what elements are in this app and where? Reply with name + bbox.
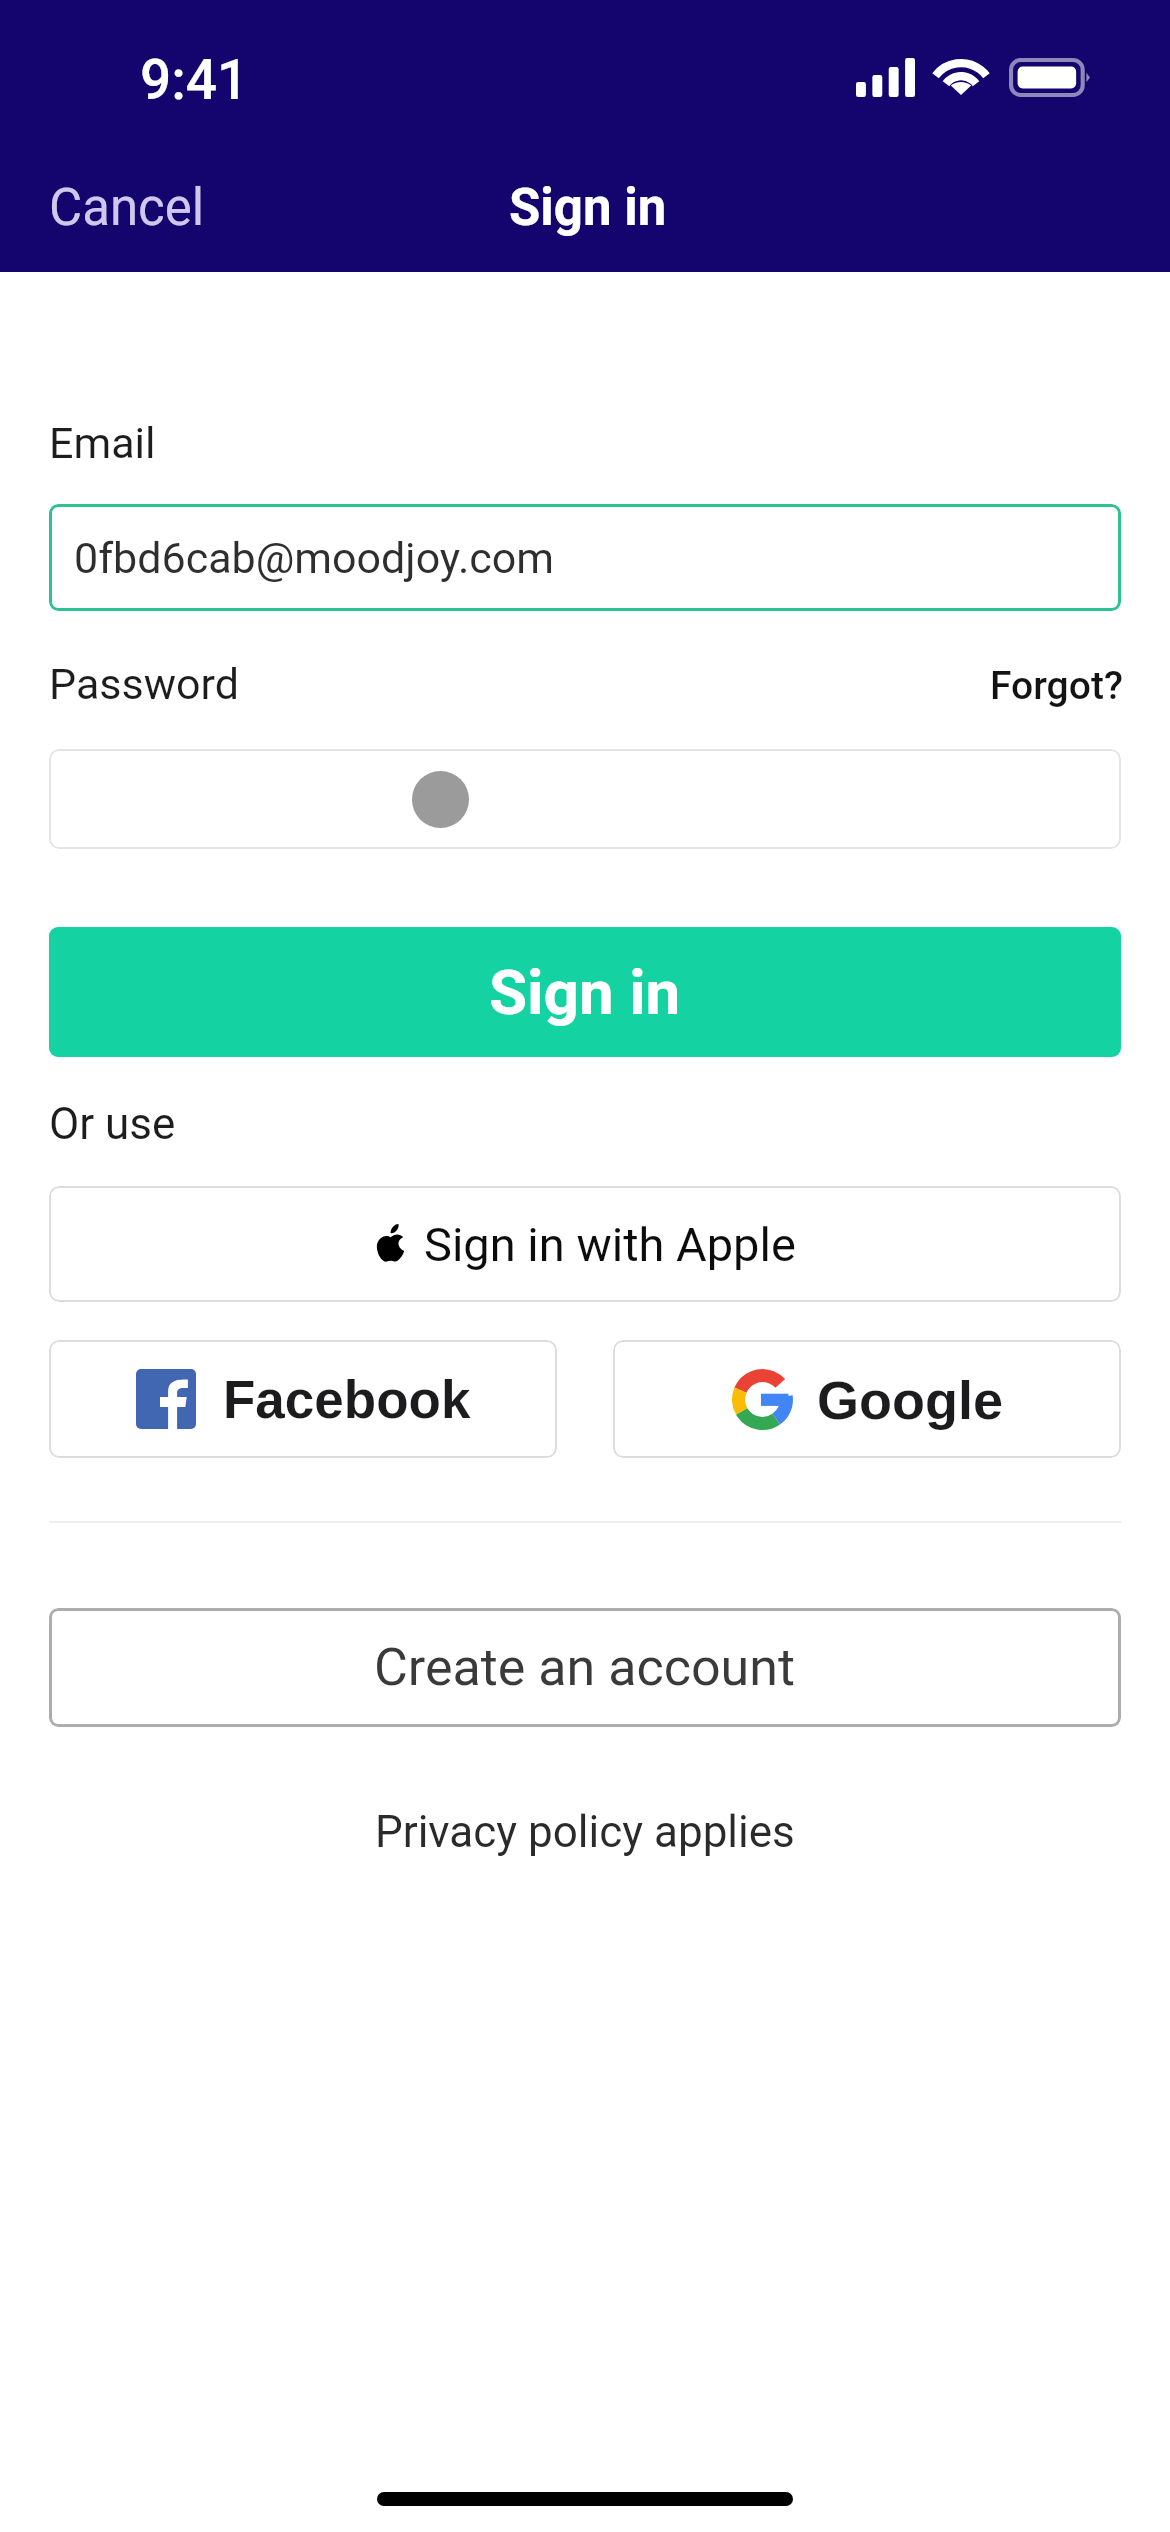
- button[interactable]: Privacy policy applies: [375, 1806, 795, 1858]
- staticText: 9:41: [140, 48, 249, 112]
- button[interactable]: Facebook: [49, 1340, 557, 1458]
- staticText: Create an account: [374, 1637, 796, 1698]
- staticText: Privacy policy applies: [375, 1806, 795, 1858]
- staticText: Facebook: [223, 1370, 471, 1429]
- other: Wi-Fi: [937, 57, 985, 95]
- button[interactable]: Create an account: [49, 1608, 1121, 1727]
- button[interactable]: Google: [613, 1340, 1121, 1458]
- staticText: Google: [817, 1370, 1003, 1430]
- staticText: 0fbd6cab@moodjoy.com: [74, 533, 555, 583]
- staticText: Sign in: [509, 178, 667, 238]
- staticText: Forgot?: [990, 663, 1123, 709]
- button[interactable]: Sign in with Apple: [49, 1186, 1121, 1302]
- other: Battery: [1009, 58, 1090, 97]
- other: Cellular signal: [856, 58, 915, 97]
- button[interactable]: Forgot?: [990, 663, 1123, 709]
- button[interactable]: 0fbd6cab@moodjoy.com: [49, 504, 1121, 611]
- staticText: Email: [49, 418, 156, 468]
- staticText: Cancel: [49, 178, 205, 238]
- staticText: Or use: [49, 1098, 176, 1150]
- staticText: Sign in with Apple: [424, 1217, 796, 1272]
- button[interactable]: Sign in: [49, 927, 1121, 1057]
- button[interactable]: Cancel: [49, 178, 205, 238]
- staticText: Sign in: [489, 956, 681, 1029]
- button[interactable]: [49, 749, 1121, 849]
- staticText: Password: [49, 659, 239, 709]
